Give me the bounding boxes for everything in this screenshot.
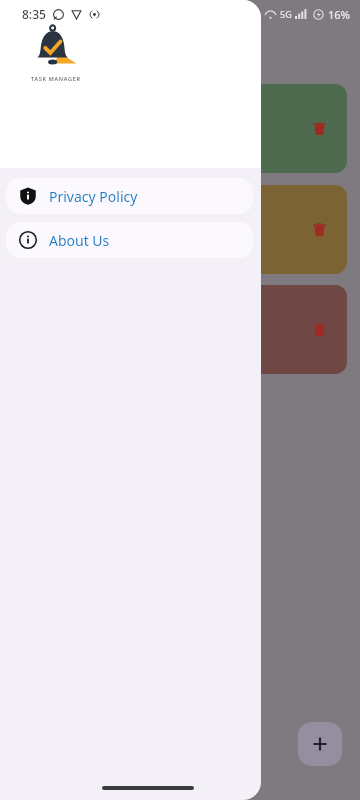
button[interactable]: Add task <box>298 722 342 766</box>
other: Delete task <box>313 323 326 336</box>
staticText: TASK MANAGER <box>31 75 81 82</box>
staticText: About Us <box>49 231 110 250</box>
staticText: 0.74 <box>248 8 259 15</box>
button[interactable]: About Us <box>6 222 253 258</box>
other: Delete task <box>313 122 326 135</box>
other: Delete task <box>313 223 326 236</box>
button[interactable]: Delete task <box>210 84 347 173</box>
button[interactable]: Delete task <box>210 285 347 374</box>
staticText: 16% <box>328 7 350 22</box>
staticText: 8:35 <box>22 6 46 22</box>
staticText: Privacy Policy <box>49 187 138 206</box>
button[interactable]: Privacy Policy <box>6 178 253 214</box>
button[interactable]: Delete task <box>210 185 347 274</box>
staticText: 5G <box>280 8 292 20</box>
